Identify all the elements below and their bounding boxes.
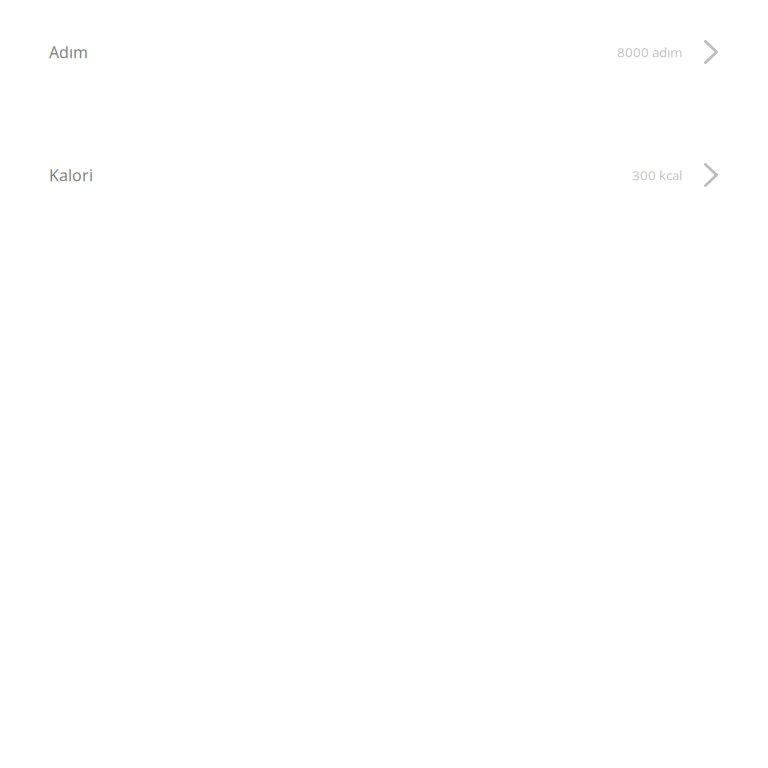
- button[interactable]: Kalori: [0, 123, 768, 227]
- staticText: 8000 adım: [617, 43, 682, 61]
- staticText: 300 kcal: [632, 166, 682, 184]
- staticText: Kalori: [49, 164, 93, 186]
- staticText: Adım: [49, 41, 88, 63]
- button[interactable]: Adım: [0, 0, 768, 104]
